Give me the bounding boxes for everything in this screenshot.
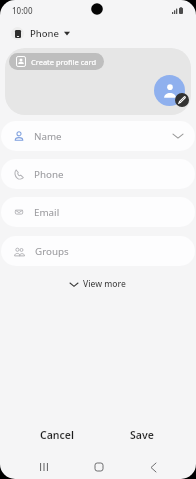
staticText: Create profile card — [31, 57, 97, 67]
button[interactable]: Recent apps — [32, 455, 56, 479]
button[interactable]: Back — [141, 455, 165, 479]
staticText: Email — [34, 206, 60, 219]
button[interactable]: Profile photo — [154, 75, 185, 106]
button[interactable]: Edit photo — [175, 93, 189, 107]
staticText: Save — [130, 428, 154, 442]
button[interactable]: Save — [126, 424, 158, 446]
staticText: View more — [83, 278, 126, 290]
staticText: Cancel — [40, 428, 74, 442]
button[interactable]: View more — [62, 274, 134, 294]
button[interactable]: Groups — [1, 236, 195, 266]
staticText: Groups — [35, 245, 69, 258]
button[interactable]: Name — [1, 121, 195, 151]
button[interactable]: Email — [1, 197, 195, 227]
staticText: Phone — [30, 27, 59, 40]
staticText: Phone — [34, 168, 64, 181]
staticText: 10:00 — [12, 5, 33, 16]
button[interactable]: Phone — [9, 25, 72, 42]
button[interactable]: Phone — [1, 159, 195, 189]
button[interactable]: Cancel — [36, 424, 78, 446]
button[interactable]: Home — [87, 455, 111, 479]
staticText: Name — [34, 130, 62, 143]
button[interactable]: Create profile card — [9, 53, 104, 70]
